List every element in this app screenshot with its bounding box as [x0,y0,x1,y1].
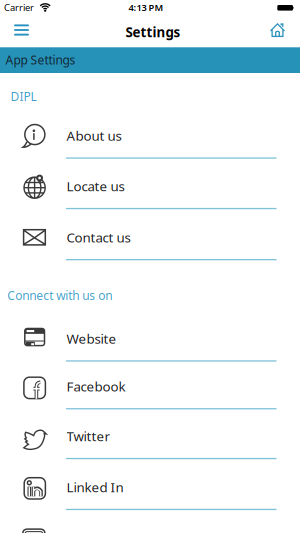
button[interactable]: More [0,510,300,533]
staticText: Linked In [66,478,123,496]
staticText: About us [66,127,121,144]
button[interactable]: Twitter [0,409,300,459]
staticText: Locate us [66,177,124,195]
staticText: Website [66,330,116,347]
button[interactable]: Locate us [0,159,300,209]
staticText: Twitter [66,427,110,445]
staticText: Settings [125,23,180,41]
staticText: 4:13 PM [129,1,164,14]
staticText: Facebook [66,377,125,395]
button[interactable]: Website [0,311,300,362]
button[interactable]: Facebook [0,359,300,409]
staticText: Contact us [66,228,130,246]
staticText: Connect with us on [7,287,112,303]
staticText: App Settings [5,52,75,68]
button[interactable]: Linked In [0,460,300,510]
button[interactable]: About us [0,108,300,159]
staticText: Carrier [4,1,34,14]
staticText: DIPL [10,88,36,104]
button[interactable]: Home [264,18,291,42]
button[interactable]: Menu [4,18,38,42]
button[interactable]: Contact us [0,210,300,260]
